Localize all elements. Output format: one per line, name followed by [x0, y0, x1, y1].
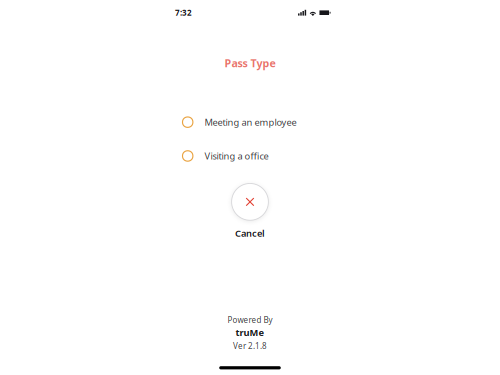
button[interactable]: Visiting a office [182, 147, 317, 165]
staticText: Ver 2.1.8 [233, 341, 267, 351]
staticText: 7:32 [175, 7, 192, 18]
staticText: truMe [235, 326, 264, 339]
button[interactable]: Cancel [220, 184, 280, 239]
staticText: Powered By [227, 315, 272, 325]
button[interactable]: Meeting an employee [182, 113, 317, 131]
staticText: Cancel [235, 227, 265, 239]
staticText: Visiting a office [204, 150, 268, 162]
staticText: Pass Type [224, 56, 275, 70]
staticText: Meeting an employee [204, 116, 296, 128]
